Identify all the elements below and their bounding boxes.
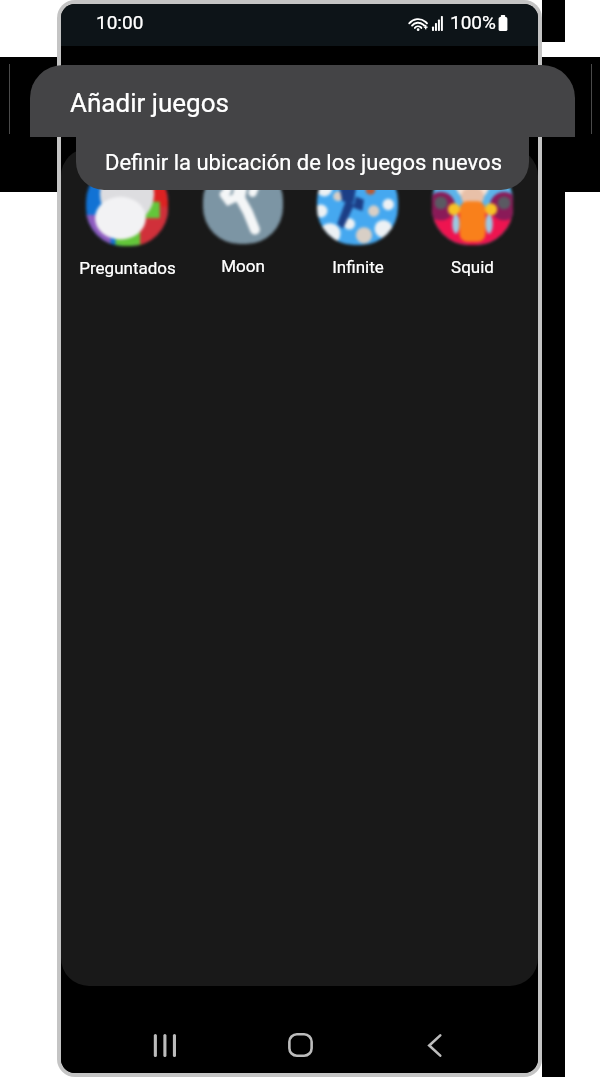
button[interactable]: Back: [405, 1015, 465, 1073]
staticText: Preguntados: [79, 258, 176, 278]
button[interactable]: Definir la ubicación de los juegos nuevo…: [76, 137, 529, 190]
staticText: Squid: [451, 257, 494, 277]
button[interactable]: Moon: [185, 164, 300, 276]
button[interactable]: Infinite: [300, 164, 415, 277]
staticText: 10:00: [96, 11, 144, 33]
staticText: Definir la ubicación de los juegos nuevo…: [105, 150, 503, 176]
staticText: Moon: [221, 256, 265, 276]
staticText: Añadir juegos: [70, 88, 229, 118]
button[interactable]: Preguntados: [69, 164, 185, 278]
staticText: 100%: [450, 11, 496, 33]
button[interactable]: Recent apps: [134, 1015, 194, 1073]
staticText: Infinite: [332, 257, 384, 277]
button[interactable]: Home: [270, 1015, 330, 1073]
button[interactable]: Añadir juegos: [30, 65, 575, 137]
button[interactable]: Squid: [415, 164, 530, 277]
